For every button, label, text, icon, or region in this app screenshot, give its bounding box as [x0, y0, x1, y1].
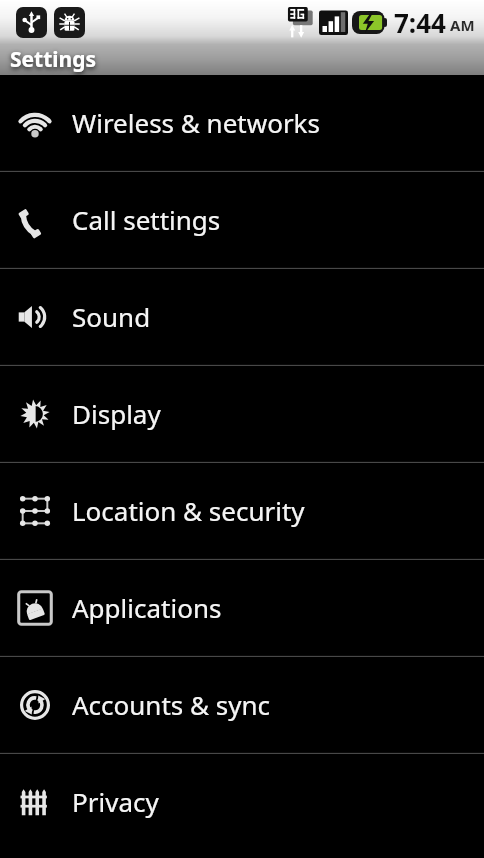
staticText: Applications: [72, 590, 222, 625]
button[interactable]: Call settings: [0, 172, 484, 267]
staticText: 7:44: [394, 5, 446, 40]
staticText: Location & security: [72, 493, 305, 528]
button[interactable]: Accounts & sync: [0, 657, 484, 752]
staticText: Display: [72, 396, 161, 431]
button[interactable]: Sound: [0, 269, 484, 364]
button[interactable]: Wireless & networks: [0, 75, 484, 170]
staticText: Sound: [72, 299, 151, 334]
staticText: AM: [450, 15, 475, 35]
button[interactable]: Applications: [0, 560, 484, 655]
staticText: Accounts & sync: [72, 687, 271, 722]
button[interactable]: Location & security: [0, 463, 484, 558]
button[interactable]: Display: [0, 366, 484, 461]
staticText: Call settings: [72, 202, 221, 237]
staticText: Settings: [10, 45, 97, 74]
button[interactable]: Privacy: [0, 754, 484, 849]
staticText: Privacy: [72, 784, 159, 819]
staticText: Wireless & networks: [72, 105, 320, 140]
